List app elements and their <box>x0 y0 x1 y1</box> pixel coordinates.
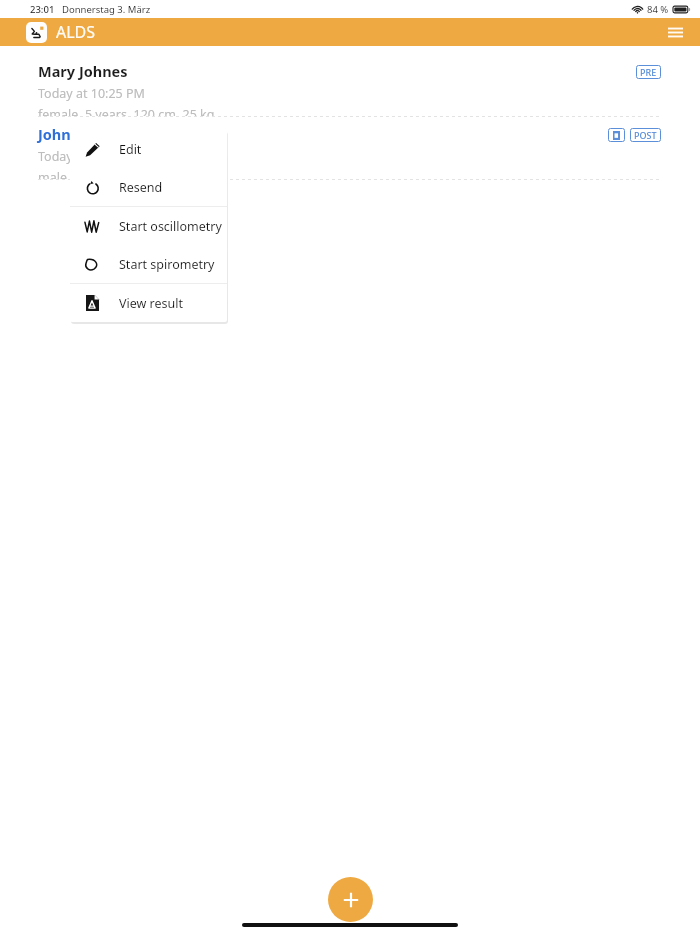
button[interactable]: ALDS logo <box>26 22 47 43</box>
button[interactable]: Menu <box>664 21 686 43</box>
staticText: POST <box>634 129 657 141</box>
staticText: 84 % <box>647 3 669 16</box>
staticText: John Doe <box>38 124 103 144</box>
button[interactable]: Start oscillometry <box>70 207 227 245</box>
staticText: View result <box>119 295 184 312</box>
other: Wi-Fi <box>632 4 643 15</box>
staticText: ALDS <box>56 21 96 43</box>
button[interactable]: PDF report <box>608 128 625 142</box>
staticText: Donnerstag 3. März <box>62 3 151 16</box>
staticText: Today at 10:21 PM <box>38 148 145 165</box>
staticText: female, 5 years, 120 cm, 25 kg <box>38 106 215 116</box>
button[interactable]: John Doe <box>0 117 700 179</box>
staticText: male, 32 years, 180 cm, 78 kg <box>38 169 211 179</box>
staticText: Edit <box>119 141 142 158</box>
staticText: Start spirometry <box>119 256 215 273</box>
staticText: Mary Johnes <box>38 61 128 81</box>
button[interactable]: PRE <box>636 65 661 79</box>
button[interactable]: Resend <box>70 168 227 206</box>
staticText: Resend <box>119 179 163 196</box>
button[interactable]: Edit <box>70 130 227 168</box>
button[interactable]: Add patient <box>328 877 373 922</box>
staticText: Today at 10:25 PM <box>38 85 145 102</box>
other: Battery <box>673 5 690 14</box>
button[interactable]: Start spirometry <box>70 245 227 283</box>
staticText: Start oscillometry <box>119 218 222 235</box>
staticText: 23:01 <box>30 3 55 16</box>
button[interactable]: POST <box>630 128 661 142</box>
button[interactable]: View result <box>70 284 227 322</box>
button[interactable]: Mary Johnes <box>0 54 700 116</box>
staticText: PRE <box>640 66 657 78</box>
